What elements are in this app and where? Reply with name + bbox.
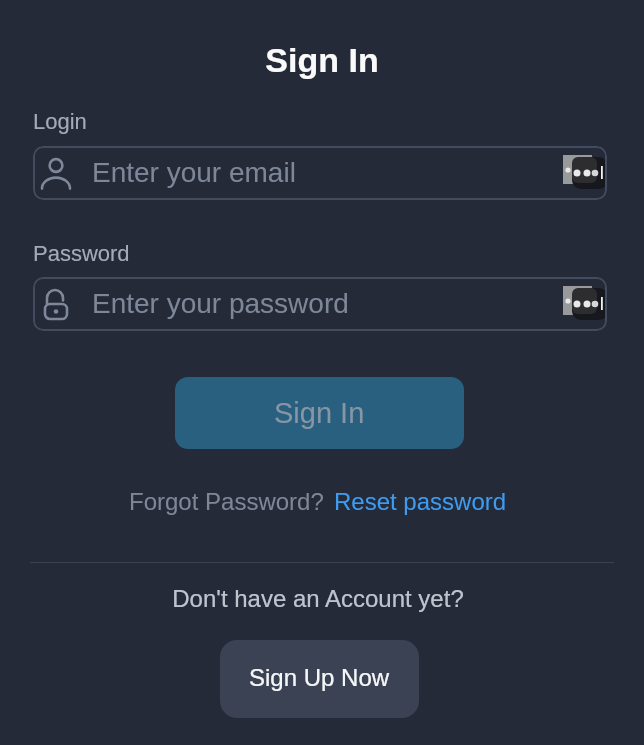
staticText: Sign In <box>274 397 365 429</box>
staticText: Don't have an Account yet? <box>0 585 640 612</box>
staticText: Password <box>33 241 130 266</box>
button[interactable]: Enter your email <box>33 146 607 200</box>
staticText: Enter your password <box>92 288 349 319</box>
staticText: Enter your email <box>92 157 296 188</box>
staticText: Sign In <box>0 41 644 79</box>
button[interactable]: Reset password <box>334 488 507 515</box>
staticText: Login <box>33 109 87 134</box>
staticText: Forgot Password? <box>129 488 331 515</box>
staticText: Sign Up Now <box>249 664 390 691</box>
button[interactable]: Sign Up Now <box>220 640 419 718</box>
button[interactable]: Sign In <box>175 377 464 449</box>
button[interactable]: Enter your password <box>33 277 607 331</box>
